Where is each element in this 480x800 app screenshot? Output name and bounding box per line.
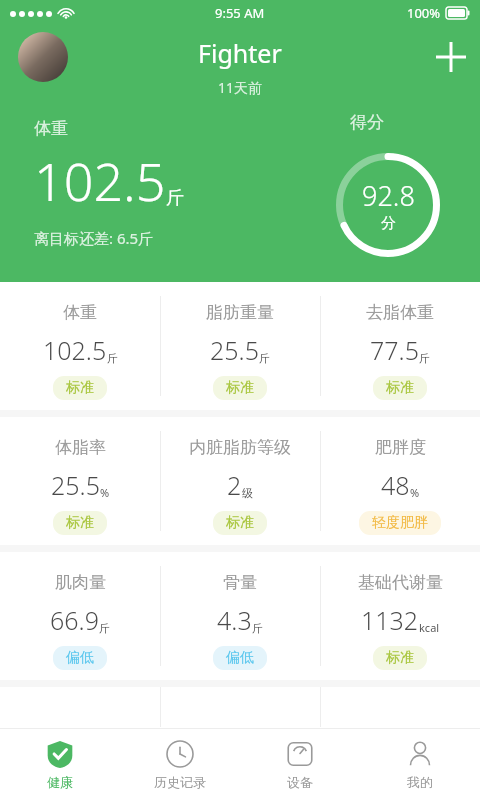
staticText: 标准 (226, 379, 254, 397)
staticText: 体重 (34, 118, 68, 139)
staticText: 92.8 (362, 177, 415, 214)
staticText: 设备 (287, 774, 313, 790)
staticText: 斤 (107, 351, 118, 365)
button[interactable]: 去脂体重 (320, 282, 480, 410)
staticText: 偏低 (66, 649, 94, 667)
staticText: 我的 (407, 774, 433, 790)
button[interactable]: 体脂率 (0, 417, 160, 545)
button[interactable]: Profile photo (18, 32, 68, 82)
staticText: Fighter (198, 36, 282, 70)
staticText: 基础代谢量 (358, 572, 443, 593)
staticText: 内脏脂肪等级 (189, 437, 291, 458)
staticText: 标准 (386, 649, 414, 667)
staticText: % (410, 485, 420, 500)
button[interactable]: 骨量 (160, 552, 320, 680)
button[interactable]: 健康 (0, 728, 120, 800)
staticText: 肌肉量 (55, 572, 106, 593)
staticText: 骨量 (223, 572, 257, 593)
staticText: 脂肪重量 (206, 302, 274, 323)
staticText: 4.3 (217, 603, 252, 637)
staticText: 25.5 (210, 333, 259, 367)
staticText: 77.5 (370, 333, 419, 367)
staticText: 102.5 (34, 145, 166, 216)
staticText: 48 (381, 468, 410, 502)
button[interactable]: 历史记录 (120, 728, 240, 800)
staticText: 体脂率 (55, 437, 106, 458)
staticText: 斤 (166, 187, 184, 210)
staticText: 健康 (47, 774, 73, 790)
button[interactable]: Score 92.8 (336, 153, 440, 257)
staticText: 标准 (66, 379, 94, 397)
staticText: 102.5 (43, 333, 107, 367)
staticText: 100% (407, 4, 441, 22)
staticText: 1132 (361, 603, 419, 637)
staticText: 级 (242, 486, 253, 500)
staticText: 去脂体重 (366, 302, 434, 323)
staticText: 斤 (259, 351, 270, 365)
button[interactable]: Add measurement (422, 28, 480, 86)
staticText: 标准 (226, 514, 254, 532)
button[interactable]: 内脏脂肪等级 (160, 417, 320, 545)
staticText: 斤 (99, 621, 110, 635)
staticText: 轻度肥胖 (372, 514, 428, 532)
button[interactable]: 设备 (240, 728, 360, 800)
staticText: 斤 (252, 621, 263, 635)
staticText: 体重 (63, 302, 97, 323)
button[interactable]: 体重 (0, 282, 160, 410)
staticText: 肥胖度 (375, 437, 426, 458)
button[interactable]: 肌肉量 (0, 552, 160, 680)
staticText: 得分 (350, 112, 384, 133)
button[interactable]: 我的 (360, 728, 480, 800)
button[interactable]: 肥胖度 (320, 417, 480, 545)
button[interactable]: 基础代谢量 (320, 552, 480, 680)
staticText: % (100, 485, 110, 500)
staticText: 9:55 AM (215, 4, 265, 22)
button[interactable]: 脂肪重量 (160, 282, 320, 410)
staticText: kcal (419, 620, 440, 635)
staticText: 偏低 (226, 649, 254, 667)
staticText: 分 (381, 214, 396, 233)
staticText: 25.5 (51, 468, 100, 502)
staticText: 历史记录 (154, 774, 206, 790)
staticText: 2 (227, 468, 242, 502)
staticText: 11天前 (218, 78, 263, 97)
staticText: 标准 (386, 379, 414, 397)
staticText: 斤 (419, 351, 430, 365)
staticText: 66.9 (50, 603, 99, 637)
staticText: 离目标还差: 6.5斤 (34, 228, 154, 248)
staticText: 标准 (66, 514, 94, 532)
